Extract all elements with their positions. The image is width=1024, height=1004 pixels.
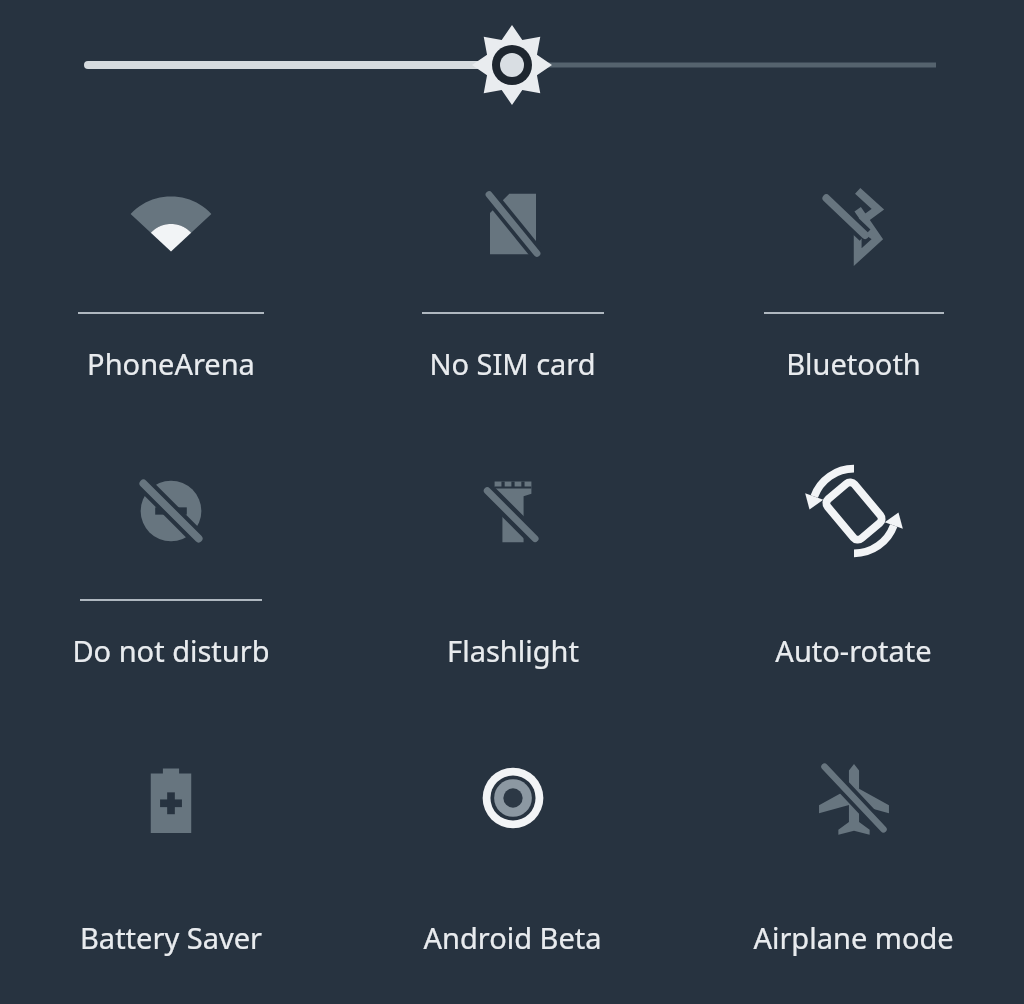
staticText: Bluetooth bbox=[786, 344, 921, 383]
button[interactable]: Battery Saver bbox=[0, 718, 342, 957]
staticText: Do not disturb bbox=[72, 631, 270, 670]
button[interactable]: Flashlight bbox=[342, 431, 683, 670]
staticText: No SIM card bbox=[429, 344, 596, 383]
button[interactable]: Do not disturb bbox=[0, 431, 342, 670]
button[interactable]: Android Beta bbox=[342, 718, 683, 957]
button[interactable]: Bluetooth bbox=[683, 144, 1024, 383]
button[interactable]: Brightness bbox=[0, 0, 1024, 130]
button[interactable]: PhoneArena bbox=[0, 144, 342, 383]
button[interactable]: Auto-rotate bbox=[683, 431, 1024, 670]
button[interactable]: Airplane mode bbox=[683, 718, 1024, 957]
button[interactable]: No SIM card bbox=[342, 144, 683, 383]
staticText: Flashlight bbox=[447, 631, 579, 670]
staticText: Airplane mode bbox=[753, 918, 954, 957]
staticText: PhoneArena bbox=[87, 344, 255, 383]
staticText: Battery Saver bbox=[80, 918, 262, 957]
staticText: Auto-rotate bbox=[775, 631, 932, 670]
staticText: Android Beta bbox=[423, 918, 602, 957]
